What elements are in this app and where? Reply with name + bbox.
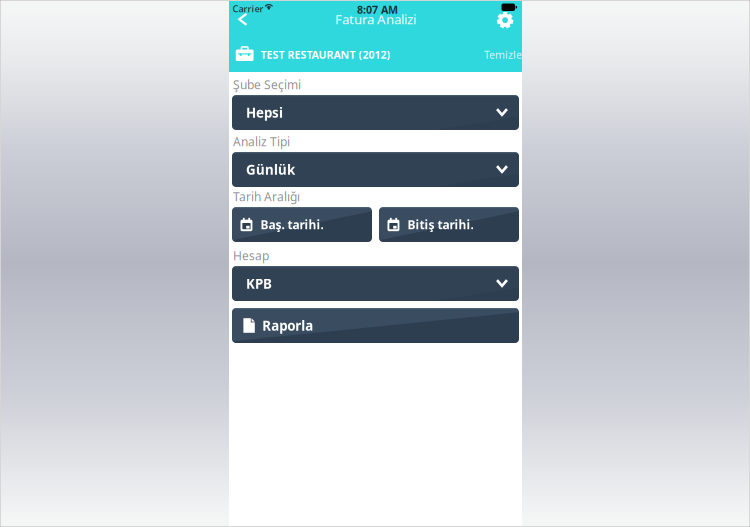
staticText: Raporla (262, 317, 313, 334)
staticText: 8:07 AM (357, 2, 398, 17)
staticText: Baş. tarihi. (260, 216, 323, 232)
staticText: Tarih Aralığı (233, 188, 300, 204)
button[interactable]: Baş. tarihi. (232, 207, 372, 242)
button[interactable]: TEST RESTAURANT (2012) (229, 38, 522, 71)
staticText: Hepsi (246, 104, 283, 121)
staticText: Bitiş tarihi. (407, 216, 473, 232)
button[interactable]: Back (229, 6, 271, 32)
button[interactable]: Günlük (232, 152, 519, 187)
staticText: Hesap (233, 247, 269, 263)
button[interactable]: Bitiş tarihi. (379, 207, 519, 242)
button[interactable]: Raporla (232, 308, 519, 343)
button[interactable]: Settings (479, 7, 522, 33)
button[interactable]: KPB (232, 266, 519, 301)
staticText: Carrier (232, 2, 263, 15)
staticText: Fatura Analizi (335, 10, 416, 28)
staticText: Temizle (484, 47, 522, 62)
button[interactable]: Hepsi (232, 95, 519, 130)
staticText: Günlük (246, 161, 295, 178)
staticText: Şube Seçimi (233, 76, 301, 92)
staticText: KPB (246, 275, 272, 292)
staticText: TEST RESTAURANT (2012) (260, 47, 390, 62)
staticText: Analiz Tipi (233, 133, 290, 149)
